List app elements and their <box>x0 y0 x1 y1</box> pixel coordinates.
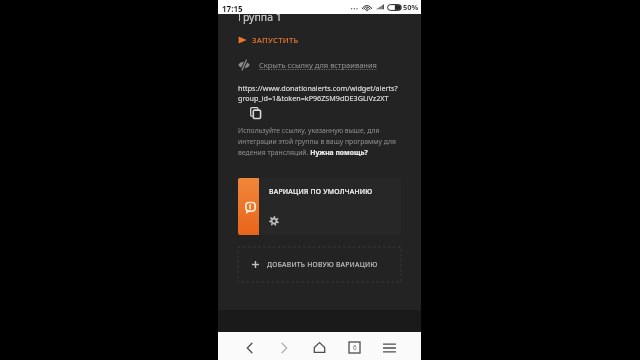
button[interactable]: Home <box>302 334 337 360</box>
staticText: ДОБАВИТЬ НОВУЮ ВАРИАЦИЮ <box>267 260 378 269</box>
button[interactable]: Copy link <box>248 105 263 121</box>
button[interactable]: Back <box>232 334 267 360</box>
staticText: Скрыть ссылку для встраивания <box>259 60 377 70</box>
button[interactable]: Variation settings <box>266 213 282 229</box>
staticText: 6 <box>353 343 357 352</box>
button[interactable]: ДОБАВИТЬ НОВУЮ ВАРИАЦИЮ <box>238 247 401 282</box>
button[interactable]: ВАРИАЦИЯ ПО УМОЛЧАНИЮ <box>238 178 401 235</box>
staticText: https://www.donationalerts.com/widget/al… <box>238 83 398 103</box>
button[interactable]: Скрыть ссылку для встраивания <box>238 60 377 70</box>
button[interactable]: Menu <box>372 334 407 360</box>
staticText: 17:15 <box>222 3 243 14</box>
button[interactable]: Tabs <box>337 334 372 360</box>
button[interactable]: ЗАПУСТИТЬ <box>236 33 301 47</box>
staticText: 50% <box>403 2 419 12</box>
staticText: ВАРИАЦИЯ ПО УМОЛЧАНИЮ <box>269 187 373 196</box>
staticText: Группа 1 <box>238 10 282 24</box>
button[interactable]: Forward <box>267 334 302 360</box>
staticText: ЗАПУСТИТЬ <box>252 35 299 45</box>
staticText: Используйте ссылку, указанную выше, для … <box>238 126 396 157</box>
